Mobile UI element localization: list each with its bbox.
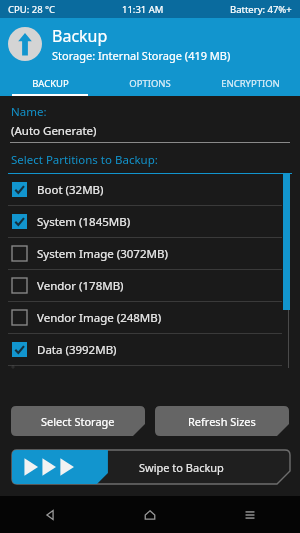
staticText: System (1845MB) (37, 214, 131, 230)
button[interactable]: Back (0, 496, 100, 533)
staticText: CPU: 28 °C (8, 3, 56, 16)
staticText: Vendor (178MB) (37, 278, 124, 294)
button[interactable]: (Auto Generate) (11, 123, 97, 139)
button[interactable]: BACKUP (0, 70, 100, 96)
staticText: Vendor Image (248MB) (37, 310, 162, 326)
staticText: Name: (11, 104, 47, 120)
staticText: ENCRYPTION (221, 77, 280, 90)
staticText: 11:31 AM (122, 3, 164, 16)
button[interactable]: Vendor (178MB) (0, 270, 300, 301)
button[interactable]: Boot (32MB) (0, 174, 300, 205)
staticText: Select Storage (41, 414, 115, 429)
staticText: Storage: Internal Storage (419 MB) (52, 48, 231, 63)
button[interactable]: Recent apps (200, 496, 300, 533)
staticText: OPTIONS (129, 77, 171, 90)
button[interactable]: OPTIONS (100, 70, 200, 96)
staticText: Select Partitions to Backup: (11, 152, 158, 168)
button[interactable]: Swipe to Backup (12, 450, 290, 484)
button[interactable]: Cache (0MB) (0, 366, 300, 368)
button[interactable]: Home (100, 496, 200, 533)
button[interactable]: ENCRYPTION (200, 70, 300, 96)
button[interactable]: Select Storage (11, 406, 145, 436)
staticText: Backup (52, 25, 108, 47)
button[interactable]: Data (3992MB) (0, 334, 300, 365)
staticText: Swipe to Backup (139, 460, 224, 475)
button[interactable]: System (1845MB) (0, 206, 300, 237)
staticText: Refresh Sizes (188, 414, 256, 429)
staticText: Boot (32MB) (37, 182, 104, 198)
staticText: System Image (3072MB) (37, 246, 168, 262)
staticText: Data (3992MB) (37, 342, 117, 358)
button[interactable]: System Image (3072MB) (0, 238, 300, 269)
staticText: Battery: 47%+ (230, 3, 292, 16)
button[interactable]: Refresh Sizes (155, 406, 289, 436)
staticText: BACKUP (32, 77, 69, 90)
button[interactable]: Vendor Image (248MB) (0, 302, 300, 333)
